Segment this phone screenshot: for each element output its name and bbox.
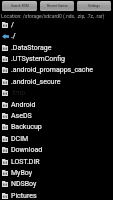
button[interactable]: NDSBoy [0, 178, 113, 189]
staticText: Settings [88, 4, 100, 8]
button[interactable]: .DataStorage [0, 42, 113, 53]
button[interactable]: Search ROM [2, 1, 37, 11]
button[interactable]: Settings [77, 1, 111, 11]
button[interactable]: Android [0, 99, 113, 110]
button[interactable]: MyBoy [0, 167, 113, 178]
button[interactable]: / [0, 19, 113, 30]
staticText: Pictures [11, 192, 37, 200]
staticText: Download [11, 146, 43, 154]
button[interactable]: .android_secure [0, 76, 113, 87]
staticText: MyBoy [11, 169, 33, 177]
button[interactable]: Download [0, 144, 113, 155]
staticText: NDSBoy [11, 180, 37, 188]
staticText: LOST.DIR [11, 158, 40, 166]
staticText: AseDS [11, 112, 32, 120]
staticText: / [11, 21, 14, 29]
staticText: .tmp [11, 89, 26, 97]
staticText: ./ [11, 32, 16, 40]
staticText: .android_secure [11, 78, 61, 86]
staticText: Android [11, 101, 36, 109]
staticText: Search ROM [11, 4, 29, 8]
staticText: .DataStorage [11, 44, 52, 52]
button[interactable]: Recent Games [40, 1, 74, 11]
staticText: Recent Games [47, 4, 68, 8]
staticText: .android_promapps_cache [11, 66, 94, 74]
button[interactable]: Backucup [0, 121, 113, 132]
staticText: DCIM [11, 135, 29, 143]
button[interactable]: AseDS [0, 110, 113, 121]
button[interactable]: .UTSystemConfig [0, 53, 113, 64]
staticText: Location: /storage/sdcard0 (.nds, .zip, … [1, 13, 105, 19]
button[interactable]: LOST.DIR [0, 156, 113, 167]
staticText: Backucup [11, 123, 42, 131]
button[interactable]: Pictures [0, 190, 113, 200]
button[interactable]: DCIM [0, 133, 113, 144]
button[interactable]: .tmp [0, 87, 113, 98]
staticText: .UTSystemConfig [11, 55, 65, 63]
button[interactable]: .android_promapps_cache [0, 64, 113, 75]
button[interactable]: ./ [0, 30, 113, 41]
